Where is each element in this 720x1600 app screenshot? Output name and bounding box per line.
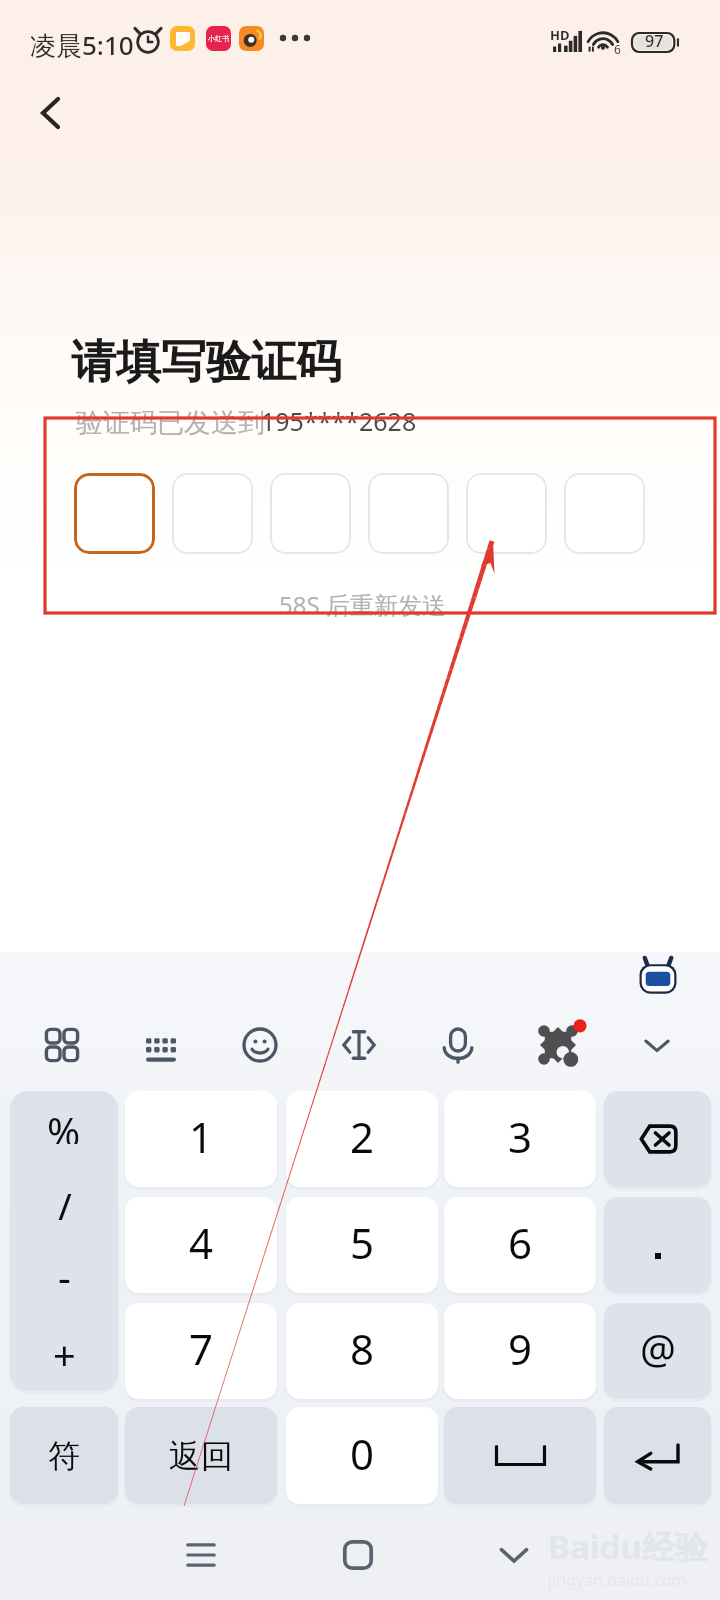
button[interactable]: 8 xyxy=(286,1303,438,1399)
staticText: 97 xyxy=(645,30,664,52)
staticText: 8 xyxy=(350,1320,375,1377)
button[interactable]: 7 xyxy=(125,1303,277,1399)
button[interactable]: 6 xyxy=(444,1197,596,1293)
staticText: 6 xyxy=(508,1214,533,1271)
button[interactable]: Plugins xyxy=(524,1011,592,1079)
staticText: 返回 xyxy=(169,1436,233,1476)
button[interactable]: @ xyxy=(604,1303,711,1399)
button[interactable]: Keyboard layout xyxy=(127,1011,195,1079)
button[interactable]: 0 xyxy=(286,1407,438,1504)
staticText: HD xyxy=(550,26,570,44)
staticText: 1 xyxy=(189,1108,214,1165)
button[interactable] xyxy=(270,473,351,554)
button[interactable]: 4 xyxy=(125,1197,277,1293)
button[interactable] xyxy=(74,473,155,554)
staticText: Baidu经验 xyxy=(548,1524,708,1569)
button[interactable]: 2 xyxy=(286,1091,438,1187)
button[interactable]: Voice input xyxy=(424,1011,492,1079)
button[interactable] xyxy=(564,473,645,554)
staticText: - xyxy=(58,1249,71,1289)
staticText: 195****2628 xyxy=(261,404,417,438)
staticText: @ xyxy=(640,1321,676,1375)
staticText: 验证码已发送到 xyxy=(76,406,265,440)
button[interactable]: 58S 后重新发送 xyxy=(279,588,446,621)
staticText: 符 xyxy=(48,1436,80,1476)
staticText: 7 xyxy=(189,1320,214,1377)
staticText: 9 xyxy=(508,1320,533,1377)
button[interactable]: 符 xyxy=(10,1407,118,1504)
button[interactable]: 9 xyxy=(444,1303,596,1399)
staticText: jingyan.baidu.com xyxy=(548,1569,687,1591)
staticText: + xyxy=(53,1327,76,1367)
staticText: 2 xyxy=(350,1108,375,1165)
button[interactable] xyxy=(368,473,449,554)
button[interactable]: Hide keyboard xyxy=(474,1515,554,1595)
button[interactable]: Home xyxy=(318,1515,398,1595)
button[interactable]: Move cursor xyxy=(325,1011,393,1079)
button[interactable]: Emoji xyxy=(226,1011,294,1079)
button[interactable]: Recents xyxy=(161,1515,241,1595)
staticText: / xyxy=(57,1180,72,1220)
button[interactable]: 1 xyxy=(125,1091,277,1187)
button[interactable]: 5 xyxy=(286,1197,438,1293)
staticText: 5 xyxy=(350,1214,375,1271)
button[interactable]: 3 xyxy=(444,1091,596,1187)
button[interactable]: Back xyxy=(18,81,82,145)
button[interactable]: Space xyxy=(444,1407,596,1504)
button[interactable]: Backspace xyxy=(604,1091,711,1187)
staticText: 4 xyxy=(189,1214,214,1271)
staticText: 凌晨5:10 xyxy=(30,27,134,63)
staticText: 6 xyxy=(614,41,621,57)
staticText: 0 xyxy=(350,1425,375,1482)
button[interactable]: Apps xyxy=(28,1011,96,1079)
button[interactable]: 返回 xyxy=(125,1407,277,1504)
button[interactable]: % xyxy=(10,1091,118,1391)
staticText: 3 xyxy=(508,1108,533,1165)
button[interactable]: Hide keyboard xyxy=(623,1011,691,1079)
staticText: % xyxy=(47,1104,81,1144)
button[interactable]: Enter xyxy=(604,1407,711,1504)
staticText: 请填写验证码 xyxy=(71,334,341,391)
button[interactable]: Bilibili xyxy=(636,955,680,997)
button[interactable] xyxy=(604,1197,711,1293)
button[interactable] xyxy=(172,473,253,554)
staticText: 58S 后重新发送 xyxy=(279,588,446,621)
staticText: 小红书 xyxy=(208,34,229,43)
button[interactable] xyxy=(466,473,547,554)
